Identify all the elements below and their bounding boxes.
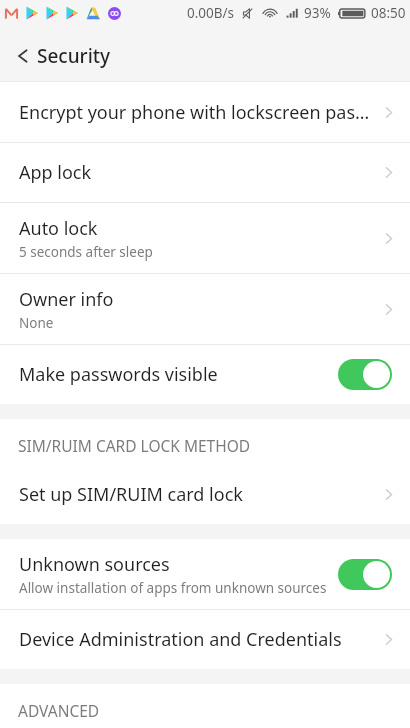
button[interactable]: Device Administration and Credentials — [0, 610, 410, 669]
staticText: 93% — [304, 4, 331, 22]
staticText: Allow installation of apps from unknown … — [19, 579, 327, 597]
staticText: 0.00B/s — [187, 4, 235, 22]
staticText: ADVANCED — [18, 700, 100, 721]
button[interactable]: Encrypt your phone with lockscreen passw… — [0, 82, 410, 142]
staticText: Unknown sources — [19, 552, 170, 577]
button[interactable]: Back — [0, 26, 410, 82]
button[interactable]: App lock — [0, 143, 410, 202]
staticText: 08:50 — [371, 4, 406, 22]
staticText: None — [19, 314, 54, 332]
staticText: Owner info — [19, 287, 114, 312]
staticText: Security — [37, 43, 111, 69]
staticText: Make passwords visible — [19, 362, 218, 387]
button[interactable]: Unknown sources — [0, 539, 410, 609]
button[interactable]: Set up SIM/RUIM card lock — [0, 464, 410, 524]
button[interactable]: Owner info — [0, 274, 410, 344]
button[interactable]: Make passwords visible — [0, 345, 410, 404]
staticText: Auto lock — [19, 216, 98, 241]
button[interactable]: Auto lock — [0, 203, 410, 273]
staticText: Encrypt your phone with lockscreen passw… — [19, 100, 377, 125]
staticText: Set up SIM/RUIM card lock — [19, 482, 243, 507]
other: Back — [14, 47, 32, 65]
staticText: App lock — [19, 160, 92, 185]
staticText: 5 seconds after sleep — [19, 243, 153, 261]
staticText: SIM/RUIM CARD LOCK METHOD — [18, 435, 251, 456]
staticText: Device Administration and Credentials — [19, 627, 342, 652]
